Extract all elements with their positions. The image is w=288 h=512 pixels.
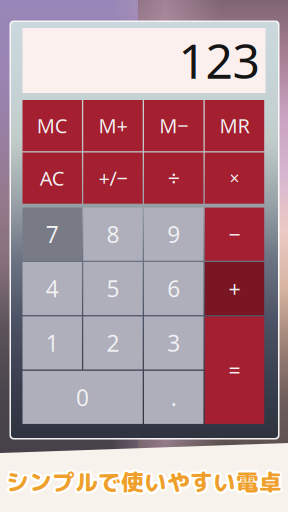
staticText: シンプルで使いやすい電卓 bbox=[4, 466, 280, 498]
staticText: シンプルで使いやすい電卓 bbox=[6, 464, 282, 495]
staticText: シンプルで使いやすい電卓 bbox=[4, 464, 280, 496]
staticText: = bbox=[228, 356, 240, 384]
staticText: シンプルで使いやすい電卓 bbox=[8, 468, 284, 499]
staticText: 2 bbox=[106, 328, 119, 358]
staticText: 4 bbox=[46, 273, 59, 304]
button[interactable]: + bbox=[205, 262, 264, 315]
staticText: シンプルで使いやすい電卓 bbox=[7, 466, 283, 498]
staticText: MR bbox=[219, 112, 249, 139]
button[interactable]: MC bbox=[22, 100, 82, 151]
button[interactable]: MR bbox=[205, 100, 264, 151]
staticText: M+ bbox=[98, 112, 127, 139]
button[interactable]: AC bbox=[22, 152, 82, 204]
staticText: +/− bbox=[98, 165, 127, 191]
staticText: シンプルで使いやすい電卓 bbox=[6, 469, 282, 500]
button[interactable]: 5 bbox=[83, 262, 143, 315]
button[interactable]: M+ bbox=[83, 100, 143, 151]
staticText: シンプルで使いやすい電卓 bbox=[6, 467, 282, 499]
staticText: + bbox=[228, 274, 240, 303]
staticText: 6 bbox=[167, 273, 180, 304]
button[interactable]: = bbox=[205, 316, 264, 424]
staticText: . bbox=[171, 382, 177, 412]
staticText: 7 bbox=[46, 219, 59, 249]
staticText: 123 bbox=[178, 28, 259, 92]
button[interactable]: M− bbox=[144, 100, 203, 151]
staticText: 1 bbox=[46, 328, 59, 358]
button[interactable]: ÷ bbox=[144, 152, 203, 204]
staticText: − bbox=[228, 220, 240, 248]
button[interactable]: − bbox=[205, 208, 264, 261]
staticText: ÷ bbox=[168, 164, 180, 192]
button[interactable]: 2 bbox=[83, 316, 143, 369]
staticText: シンプルで使いやすい電卓 bbox=[5, 466, 281, 498]
staticText: シンプルで使いやすい電卓 bbox=[8, 466, 284, 498]
staticText: × bbox=[229, 167, 239, 190]
staticText: MC bbox=[37, 112, 68, 139]
staticText: 0 bbox=[76, 382, 89, 412]
staticText: 8 bbox=[106, 219, 119, 249]
button[interactable]: 1 bbox=[22, 316, 82, 369]
button[interactable]: 8 bbox=[83, 208, 143, 261]
button[interactable]: 4 bbox=[22, 262, 82, 315]
button[interactable]: 7 bbox=[22, 208, 82, 261]
button[interactable]: 0 bbox=[22, 371, 143, 424]
button[interactable]: 9 bbox=[144, 208, 203, 261]
staticText: M− bbox=[159, 112, 188, 139]
button[interactable]: 6 bbox=[144, 262, 203, 315]
staticText: シンプルで使いやすい電卓 bbox=[6, 466, 282, 498]
button[interactable]: +/− bbox=[83, 152, 143, 204]
button[interactable]: . bbox=[144, 371, 203, 424]
staticText: AC bbox=[40, 165, 65, 191]
staticText: シンプルで使いやすい電卓 bbox=[6, 465, 282, 497]
staticText: シンプルで使いやすい電卓 bbox=[8, 464, 284, 496]
staticText: 3 bbox=[167, 328, 180, 358]
staticText: シンプルで使いやすい電卓 bbox=[4, 468, 280, 499]
staticText: 9 bbox=[167, 219, 180, 249]
staticText: 5 bbox=[106, 273, 119, 304]
button[interactable]: × bbox=[205, 152, 264, 204]
button[interactable]: 3 bbox=[144, 316, 203, 369]
